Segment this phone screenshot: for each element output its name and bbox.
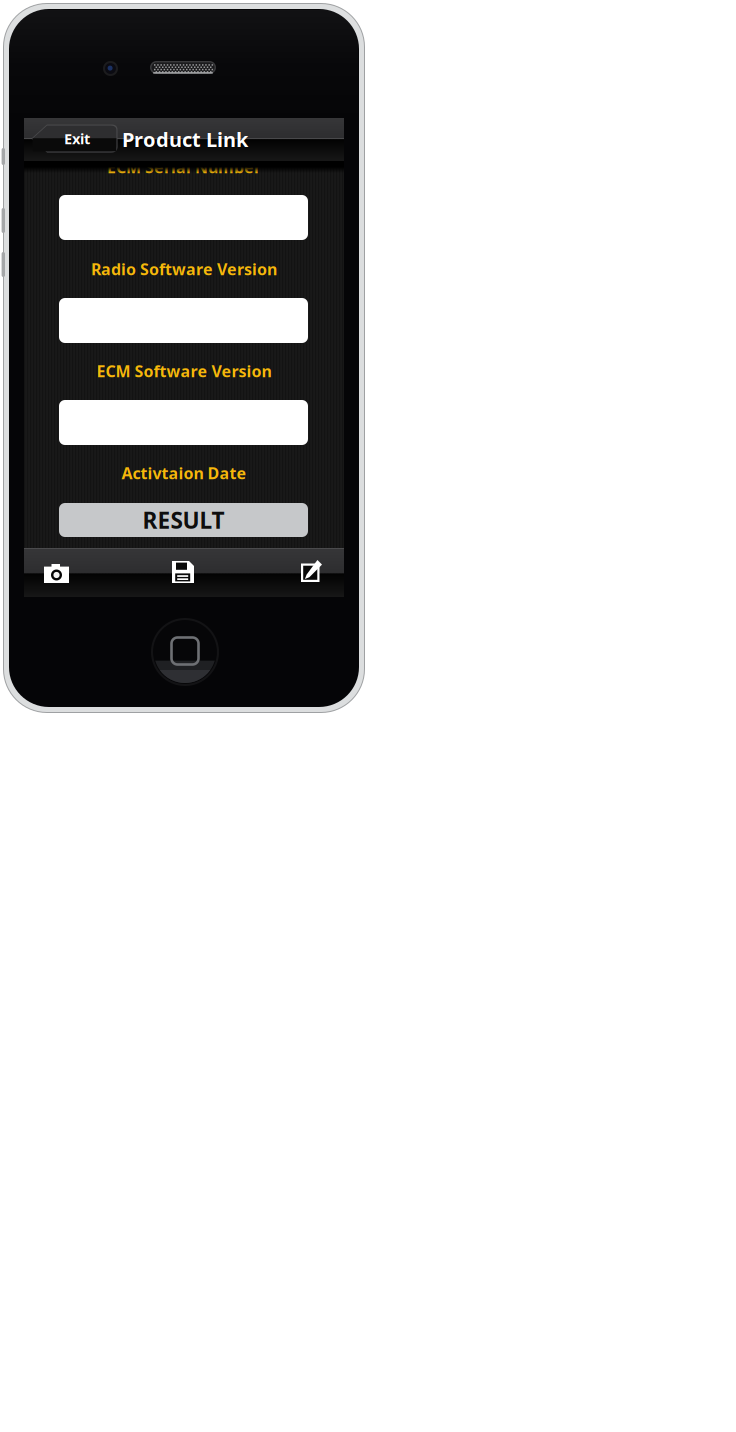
staticText: Radio Software Version (91, 258, 277, 280)
staticText: Activtaion Date (121, 462, 246, 484)
button[interactable]: Compose (301, 560, 322, 582)
staticText: Exit (64, 129, 90, 148)
button[interactable]: Camera (44, 564, 69, 583)
staticText: Product Link (122, 126, 248, 153)
button[interactable]: Save (172, 561, 194, 583)
staticText: ECM Software Version (96, 360, 271, 382)
button[interactable]: RESULT (59, 503, 308, 537)
button[interactable]: Exit (31, 124, 118, 153)
staticText: ECM Serial Number (107, 156, 261, 178)
button[interactable]: ECM Software Version (59, 400, 308, 445)
button[interactable]: Radio Software Version (59, 298, 308, 343)
button[interactable]: ECM Serial Number (59, 195, 308, 240)
staticText: RESULT (142, 505, 224, 535)
